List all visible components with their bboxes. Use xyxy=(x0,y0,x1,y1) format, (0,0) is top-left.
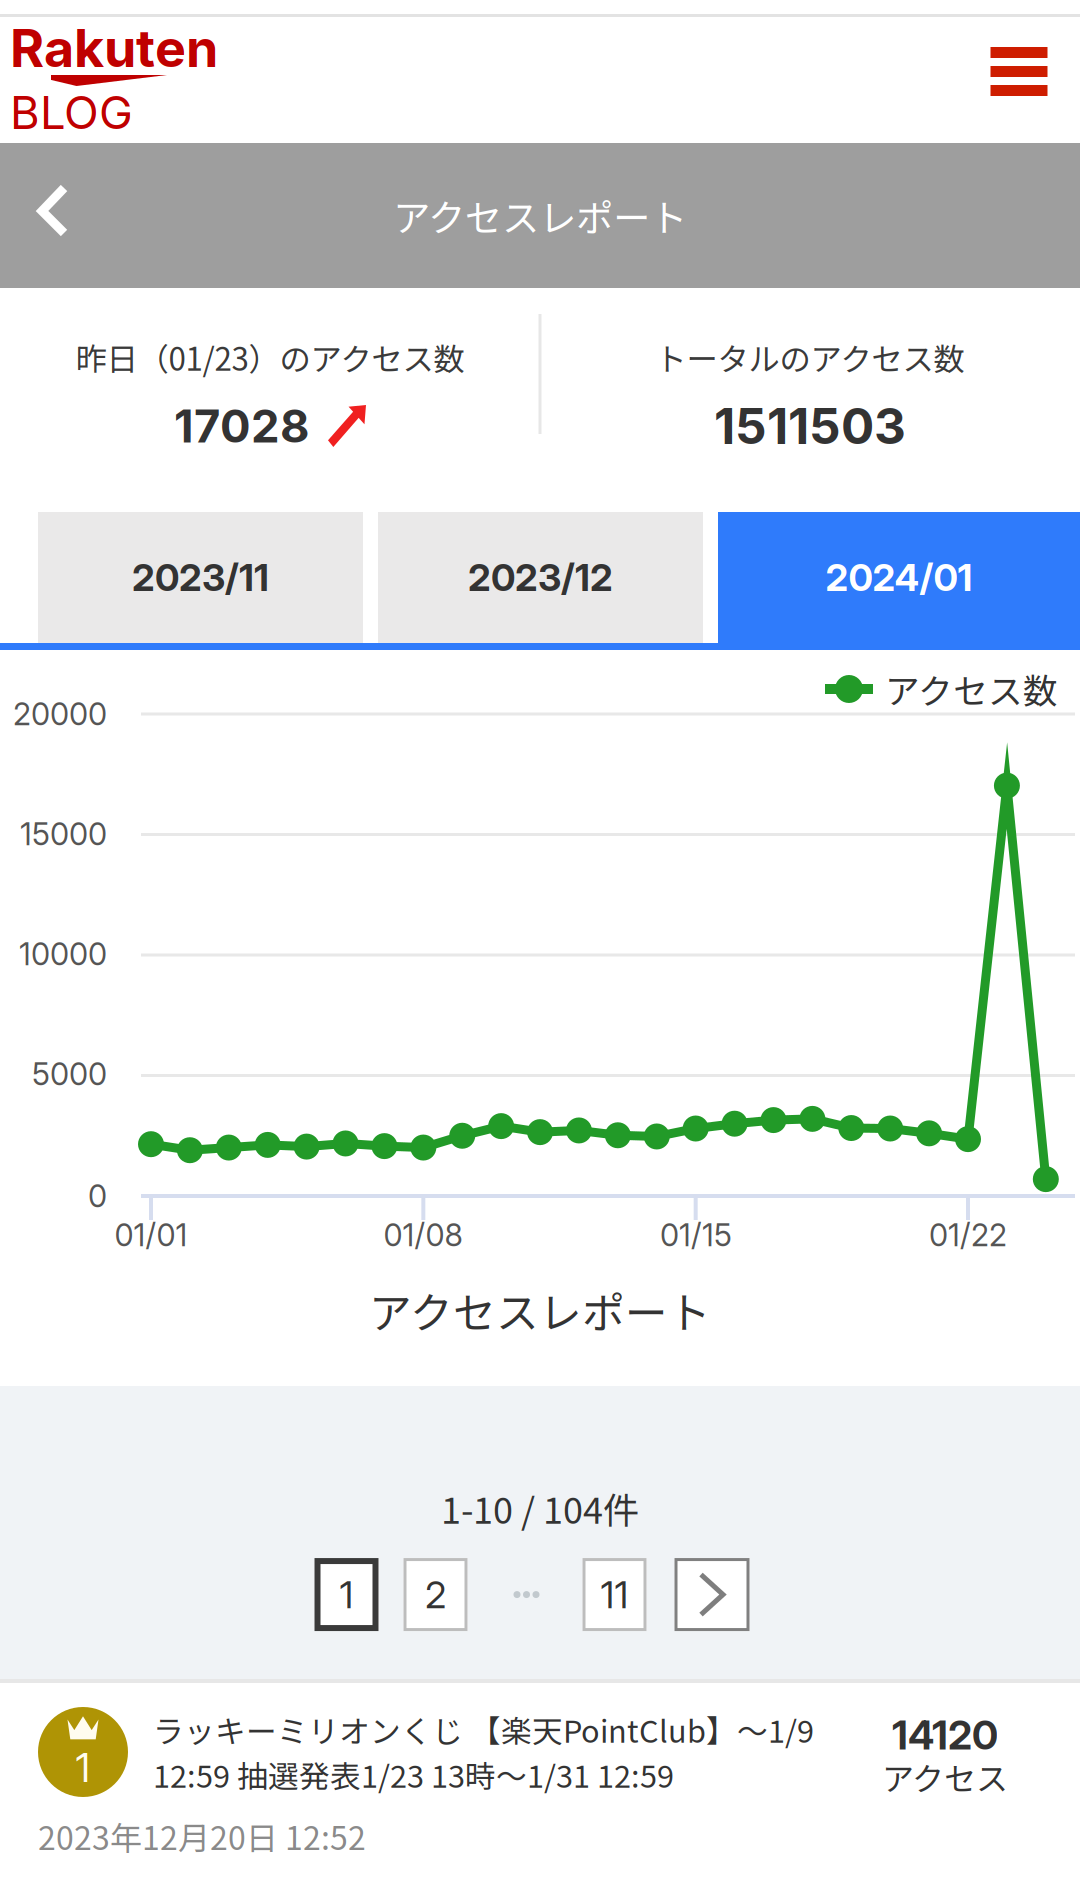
staticText: アクセス xyxy=(882,1754,1008,1800)
staticText: 2023/11 xyxy=(132,555,269,600)
staticText: Rakuten xyxy=(10,16,218,79)
staticText: アクセスレポート xyxy=(393,188,687,243)
staticText: 2023/12 xyxy=(468,555,613,600)
staticText: ラッキーミリオンくじ 【楽天PointClub】〜1/9 xyxy=(153,1707,814,1752)
staticText: 11 xyxy=(600,1572,628,1617)
staticText: 10000 xyxy=(19,935,107,972)
staticText: 12:59 抽選発表1/23 13時〜1/31 12:59 xyxy=(153,1752,674,1797)
staticText: アクセスレポート xyxy=(369,1279,711,1341)
staticText: BLOG xyxy=(10,85,133,140)
staticText: 01/01 xyxy=(114,1216,187,1253)
staticText: 0 xyxy=(88,1177,107,1214)
staticText: トータルのアクセス数 xyxy=(655,334,964,380)
staticText: 昨日（01/23）のアクセス数 xyxy=(75,334,464,380)
button[interactable]: 1 xyxy=(314,1558,378,1631)
staticText: アクセス数 xyxy=(885,664,1058,714)
staticText: 01/15 xyxy=(660,1216,732,1253)
staticText: 2 xyxy=(425,1572,446,1617)
staticText: 17028 xyxy=(174,399,310,453)
button[interactable]: Menu xyxy=(958,0,1080,143)
staticText: 20000 xyxy=(13,695,107,732)
button[interactable]: 2023/12 xyxy=(378,512,703,643)
button[interactable]: Back xyxy=(0,143,110,288)
staticText: 1 xyxy=(339,1572,353,1617)
staticText: 15000 xyxy=(20,815,107,852)
staticText: 5000 xyxy=(32,1055,107,1092)
staticText: 2024/01 xyxy=(825,555,972,600)
button[interactable]: 2023/11 xyxy=(38,512,363,643)
staticText: 1-10 / 104件 xyxy=(441,1482,639,1534)
staticText: 1511503 xyxy=(714,396,906,456)
staticText: 1 xyxy=(75,1743,90,1792)
button[interactable]: 1 xyxy=(0,1683,1080,1885)
staticText: 14120 xyxy=(892,1711,998,1759)
button[interactable]: Next page xyxy=(674,1558,749,1631)
button[interactable]: 11 xyxy=(582,1558,646,1631)
staticText: 2023年12月20日 12:52 xyxy=(38,1813,366,1859)
button[interactable]: 2024/01 xyxy=(718,512,1080,643)
staticText: 01/22 xyxy=(929,1216,1007,1253)
staticText: 01/08 xyxy=(383,1216,462,1253)
button[interactable]: 2 xyxy=(403,1558,467,1631)
